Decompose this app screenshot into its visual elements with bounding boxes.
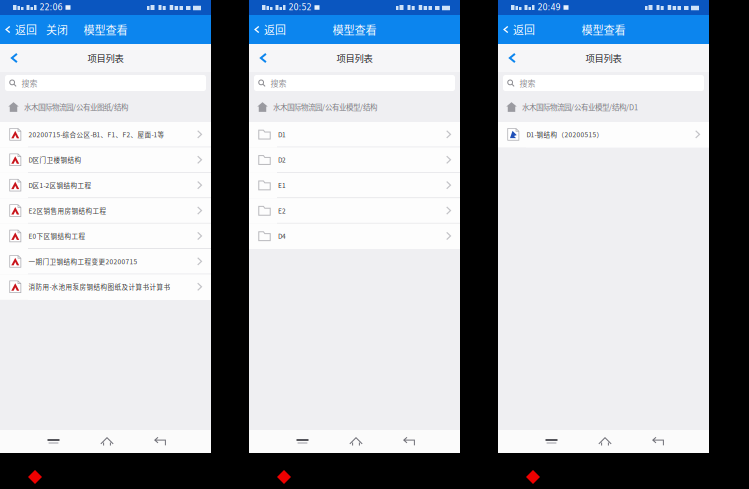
button[interactable]: D区门卫楼钢结构 — [0, 147, 211, 173]
staticText: 搜索 — [270, 77, 286, 89]
button[interactable]: 关闭 — [41, 15, 73, 44]
staticText: 消防用-水池用泵房钢结构图纸及计算书计算书 — [28, 282, 170, 291]
button[interactable]: 搜索 — [254, 75, 455, 91]
staticText: 20:49 — [537, 3, 560, 12]
button[interactable]: Recents — [33, 430, 73, 453]
button[interactable]: Recents — [282, 430, 322, 453]
staticText: D1 — [278, 130, 286, 139]
button[interactable]: D4 — [249, 224, 460, 249]
staticText: 返回 — [264, 22, 286, 37]
button[interactable]: D区1-2区钢结构工程 — [0, 173, 211, 198]
button[interactable]: Back — [638, 430, 678, 453]
staticText: 返回 — [513, 22, 535, 37]
button[interactable]: 返回 — [0, 15, 41, 44]
button[interactable]: 20200715-综合公区-B1、F1、F2、屋面-1等 — [0, 122, 211, 147]
button[interactable]: 一期门卫钢结构工程变更20200715 — [0, 249, 211, 274]
staticText: E1 — [278, 180, 286, 190]
button[interactable]: 搜索 — [5, 75, 206, 91]
staticText: D2 — [278, 155, 286, 164]
button[interactable]: 消防用-水池用泵房钢结构图纸及计算书计算书 — [0, 274, 211, 300]
button[interactable]: 返回 — [249, 15, 290, 44]
button[interactable]: E2 — [249, 198, 460, 224]
button[interactable]: Back — [498, 44, 527, 72]
staticText: 模型查看 — [332, 21, 376, 38]
staticText: 项目列表 — [87, 51, 123, 65]
button[interactable]: E2区销售用房钢结构工程 — [0, 198, 211, 224]
staticText: E2 — [278, 206, 286, 215]
staticText: D区1-2区钢结构工程 — [28, 180, 91, 190]
staticText: 20200715-综合公区-B1、F1、F2、屋面-1等 — [28, 130, 164, 139]
staticText: 模型查看 — [581, 21, 625, 38]
staticText: 水木国际物流园/公有业模型/结构 — [273, 102, 377, 112]
staticText: 22:06 — [39, 3, 62, 12]
button[interactable]: Home — [87, 430, 127, 453]
button[interactable]: D1 — [249, 122, 460, 147]
staticText: D1-钢结构（20200515） — [526, 130, 603, 139]
button[interactable]: Back — [249, 44, 278, 72]
button[interactable]: Back — [0, 44, 29, 72]
staticText: 模型查看 — [83, 21, 127, 38]
staticText: 搜索 — [21, 77, 37, 89]
staticText: 一期门卫钢结构工程变更20200715 — [28, 257, 137, 266]
staticText: 20:52 — [288, 3, 311, 12]
button[interactable]: Home — [585, 430, 625, 453]
staticText: 关闭 — [46, 22, 68, 37]
button[interactable]: D1-钢结构（20200515） — [498, 122, 709, 147]
button[interactable]: 搜索 — [503, 75, 704, 91]
button[interactable]: Back — [389, 430, 429, 453]
staticText: 水木国际物流园/公有业模型/结构/D1 — [522, 102, 638, 112]
staticText: 项目列表 — [336, 51, 372, 65]
button[interactable]: Home — [336, 430, 376, 453]
staticText: 搜索 — [519, 77, 535, 89]
staticText: D区门卫楼钢结构 — [28, 155, 81, 164]
button[interactable]: E1 — [249, 173, 460, 198]
button[interactable]: 返回 — [498, 15, 539, 44]
staticText: 项目列表 — [585, 51, 621, 65]
staticText: 返回 — [15, 22, 37, 37]
button[interactable]: Recents — [531, 430, 571, 453]
staticText: E0下区钢结构工程 — [28, 231, 85, 241]
button[interactable]: E0下区钢结构工程 — [0, 224, 211, 249]
staticText: D4 — [278, 231, 286, 241]
staticText: 水木国际物流园/公有业图纸/结构 — [24, 102, 128, 112]
button[interactable]: Back — [140, 430, 180, 453]
button[interactable]: D2 — [249, 147, 460, 173]
staticText: E2区销售用房钢结构工程 — [28, 206, 106, 215]
